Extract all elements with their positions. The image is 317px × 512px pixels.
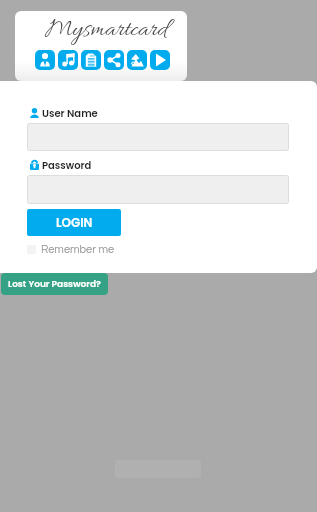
button[interactable]: Play	[150, 50, 170, 70]
staticText: LOGIN	[56, 214, 93, 231]
button[interactable]: Remember me	[27, 244, 115, 255]
staticText: Lost Your Password?	[8, 278, 101, 291]
button[interactable]: Lost Your Password?	[1, 273, 108, 295]
staticText: Password	[42, 158, 92, 172]
button[interactable]: LOGIN	[27, 209, 121, 236]
button[interactable]: Media	[127, 50, 147, 70]
button[interactable]: User name field	[27, 123, 289, 151]
staticText: Mysmartcard	[45, 15, 167, 46]
button[interactable]: Documents	[81, 50, 101, 70]
button[interactable]: Password field	[27, 175, 289, 204]
button[interactable]: Share	[104, 50, 124, 70]
button[interactable]: Music	[58, 50, 78, 70]
button[interactable]: Contacts	[35, 50, 55, 70]
staticText: Remember me	[41, 244, 115, 255]
staticText: User Name	[42, 106, 98, 120]
